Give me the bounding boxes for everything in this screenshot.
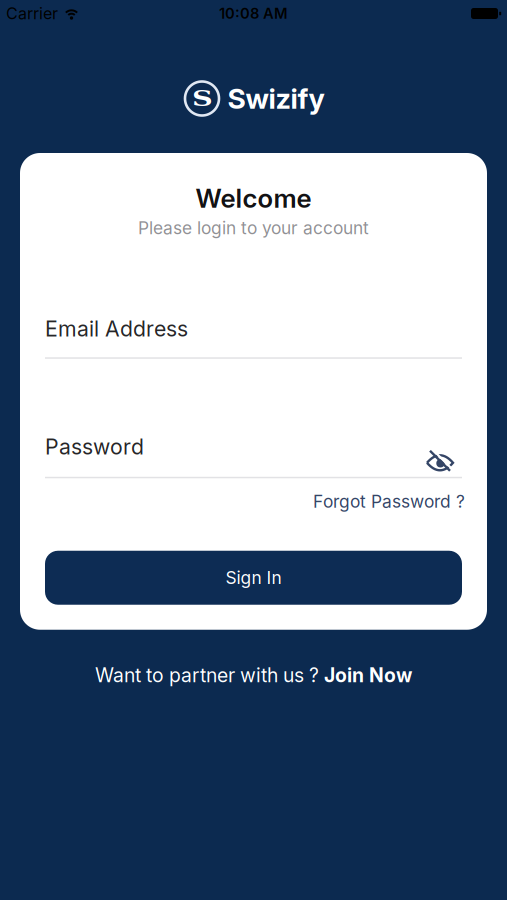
staticText: Sign In: [225, 567, 281, 588]
staticText: Want to partner with us ?: [95, 664, 324, 686]
staticText: Join Now: [324, 664, 412, 686]
staticText: Swizify: [227, 82, 324, 115]
staticText: S: [194, 86, 209, 111]
staticText: Welcome: [195, 183, 311, 214]
staticText: Email Address: [45, 316, 188, 341]
staticText: Password: [45, 434, 144, 459]
staticText: Please login to your account: [138, 218, 369, 238]
staticText: 10:08 AM: [219, 5, 288, 22]
button[interactable]: Join Now: [324, 664, 412, 686]
staticText: Forgot Password ?: [313, 491, 465, 512]
staticText: Carrier: [6, 4, 58, 23]
button[interactable]: Show password: [426, 450, 454, 476]
button[interactable]: Sign In: [45, 551, 462, 605]
button[interactable]: Forgot Password ?: [313, 491, 465, 512]
